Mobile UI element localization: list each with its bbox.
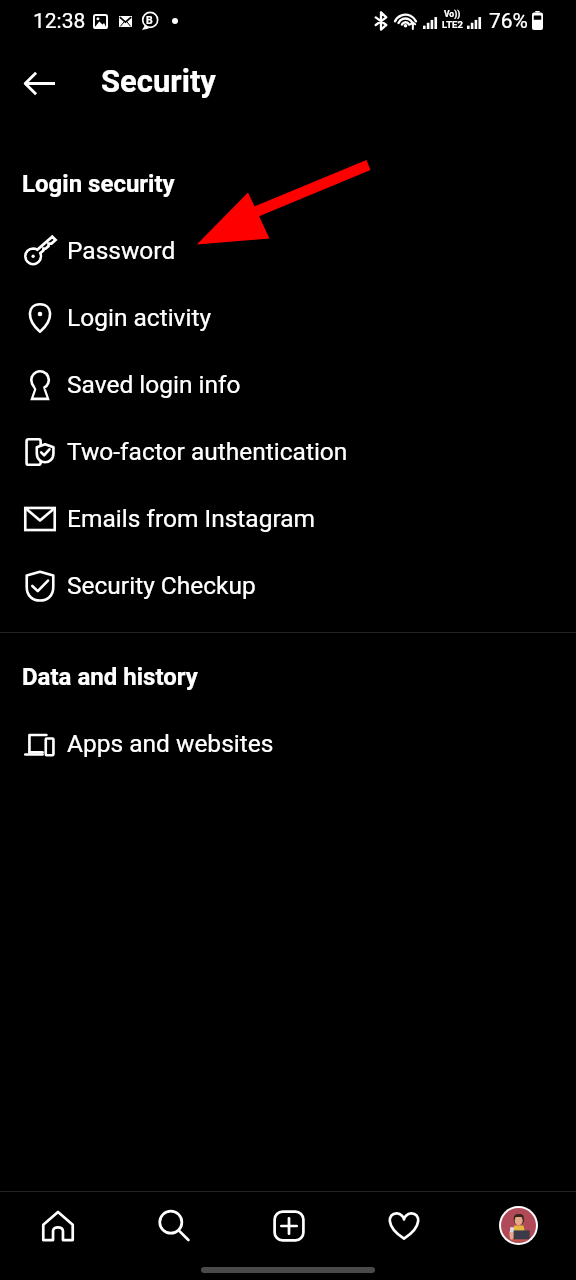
button[interactable]: Two-factor authentication <box>0 418 576 485</box>
staticText: Apps and websites <box>67 729 274 758</box>
staticText: Login security <box>22 170 175 198</box>
button[interactable]: Search <box>116 1192 231 1259</box>
staticText: Data and history <box>22 663 198 691</box>
staticText: Login activity <box>67 303 212 332</box>
button[interactable]: Profile <box>461 1192 576 1259</box>
staticText: Saved login info <box>67 370 241 399</box>
button[interactable]: Saved login info <box>0 351 576 418</box>
staticText: Security Checkup <box>67 571 256 600</box>
button[interactable]: Back <box>8 55 70 111</box>
button[interactable]: Security Checkup <box>0 552 576 619</box>
staticText: Vo)) <box>444 9 461 19</box>
staticText: Two-factor authentication <box>67 437 348 466</box>
staticText: Security <box>101 63 216 99</box>
staticText: LTE2 <box>442 19 463 30</box>
staticText: B <box>146 14 153 26</box>
button[interactable]: Activity <box>346 1192 461 1259</box>
button[interactable]: Emails from Instagram <box>0 485 576 552</box>
button[interactable]: Login activity <box>0 284 576 351</box>
staticText: Emails from Instagram <box>67 504 316 533</box>
button[interactable]: Apps and websites <box>0 710 576 777</box>
staticText: Password <box>67 236 176 265</box>
button[interactable]: Password <box>0 217 576 284</box>
button[interactable]: Home <box>0 1192 116 1259</box>
staticText: 76% <box>489 9 528 34</box>
staticText: 12:38 <box>33 9 86 34</box>
button[interactable]: Create <box>231 1192 346 1259</box>
